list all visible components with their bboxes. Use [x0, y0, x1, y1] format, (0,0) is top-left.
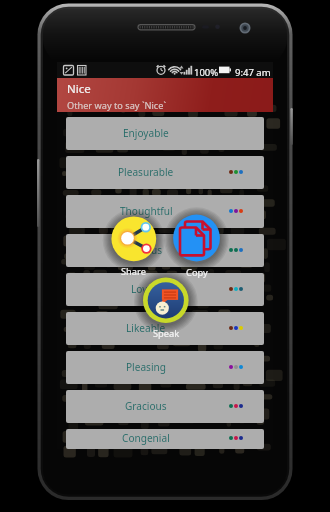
button[interactable]: Speak	[143, 277, 189, 340]
staticText: Thoughtful	[120, 204, 173, 218]
button[interactable]: Enjoyable	[66, 117, 264, 150]
staticText: Joyous	[131, 243, 162, 257]
staticText: Nice	[67, 81, 91, 97]
staticText: Lovely	[131, 282, 161, 296]
staticText: 100%	[194, 66, 219, 79]
staticText: Share	[121, 265, 146, 278]
staticText: Speak	[153, 327, 180, 340]
staticText: 9:47 am	[235, 66, 271, 79]
staticText: Likeable	[126, 321, 166, 335]
button[interactable]: Thoughtful	[66, 195, 264, 228]
button[interactable]: Joyous	[66, 234, 264, 267]
staticText: Congenial	[122, 431, 170, 445]
button[interactable]: Congenial	[66, 429, 264, 449]
button[interactable]: Pleasurable	[66, 156, 264, 189]
button[interactable]: Likeable	[66, 312, 264, 345]
staticText: Pleasing	[126, 360, 166, 374]
staticText: Other way to say `Nice`	[67, 99, 166, 112]
button[interactable]: Gracious	[66, 390, 264, 423]
staticText: Copy	[186, 266, 208, 279]
staticText: Gracious	[125, 399, 167, 413]
button[interactable]: Pleasing	[66, 351, 264, 384]
button[interactable]: Copy	[173, 215, 220, 279]
staticText: Pleasurable	[118, 165, 174, 179]
button[interactable]: Lovely	[66, 273, 264, 306]
staticText: Enjoyable	[123, 126, 169, 140]
button[interactable]: Share	[111, 216, 156, 278]
